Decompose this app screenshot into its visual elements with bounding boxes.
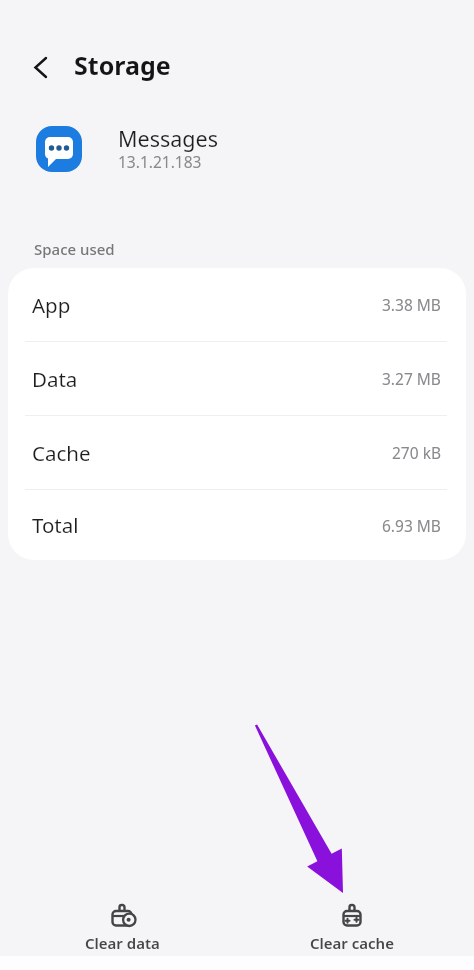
staticText: 3.27 MB (382, 368, 441, 389)
staticText: Clear cache (310, 933, 394, 953)
staticText: Space used (34, 239, 115, 259)
button[interactable]: Cache (8, 416, 466, 489)
button[interactable] (22, 50, 58, 84)
staticText: Storage (74, 48, 171, 82)
staticText: App (32, 291, 71, 319)
staticText: 270 kB (392, 442, 441, 463)
button[interactable]: Clear cache (292, 896, 412, 956)
staticText: Messages (118, 124, 218, 153)
button[interactable]: Clear data (62, 896, 182, 956)
button[interactable]: App (8, 268, 466, 341)
button[interactable]: Data (8, 342, 466, 415)
staticText: Total (32, 511, 79, 539)
button[interactable]: Total (8, 490, 466, 560)
staticText: 6.93 MB (382, 515, 441, 536)
staticText: Cache (32, 439, 91, 467)
staticText: Clear data (85, 933, 160, 953)
staticText: Data (32, 365, 78, 393)
staticText: 13.1.21.183 (118, 151, 202, 172)
staticText: 3.38 MB (382, 294, 441, 315)
